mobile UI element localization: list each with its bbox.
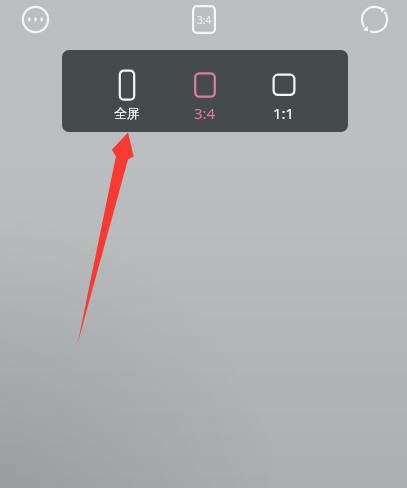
button[interactable]: 全屏 [89, 50, 165, 132]
staticText: 3:4 [197, 13, 212, 27]
staticText: 3:4 [194, 103, 216, 123]
button[interactable]: 3:4 [192, 5, 216, 34]
button[interactable]: More options [18, 2, 53, 37]
staticText: 1:1 [273, 103, 295, 123]
button[interactable]: 3:4 [167, 50, 243, 132]
staticText: 全屏 [114, 105, 140, 121]
button[interactable]: 1:1 [246, 50, 322, 132]
button[interactable]: Switch camera [357, 2, 392, 37]
